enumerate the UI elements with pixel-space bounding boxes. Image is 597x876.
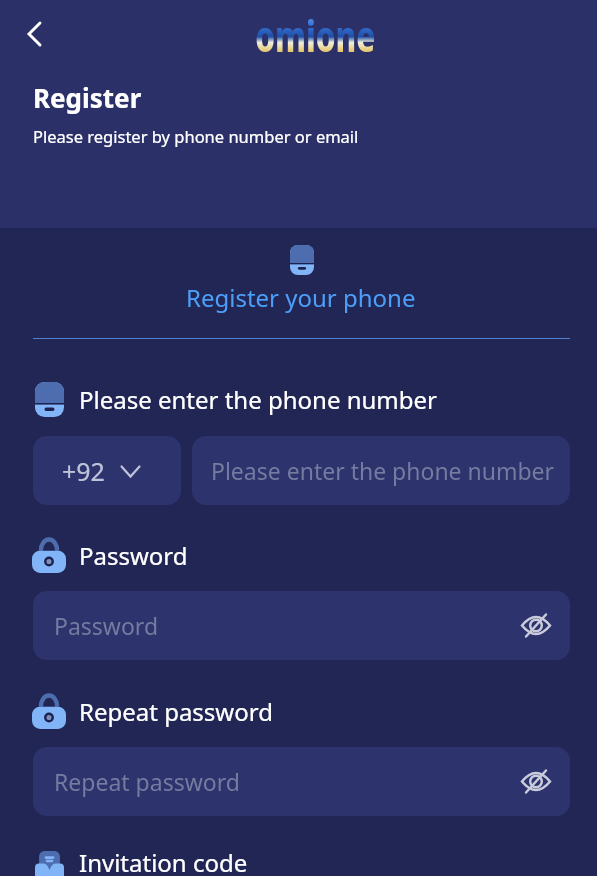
staticText: Invitation code: [79, 846, 248, 876]
staticText: +92: [62, 454, 105, 488]
button[interactable]: +92: [33, 436, 181, 505]
staticText: Please register by phone number or email: [33, 125, 359, 147]
button[interactable]: Repeat password: [33, 747, 570, 816]
staticText: Repeat password: [79, 695, 273, 728]
staticText: omione: [255, 6, 376, 65]
staticText: Password: [54, 610, 159, 641]
staticText: Repeat password: [54, 766, 240, 797]
staticText: Register: [33, 80, 142, 115]
button[interactable]: Please enter the phone number: [192, 436, 570, 505]
button[interactable]: Register your phone: [0, 281, 597, 314]
staticText: Please enter the phone number: [79, 383, 438, 416]
staticText: Password: [79, 539, 188, 572]
button[interactable]: Password: [33, 591, 570, 660]
staticText: Please enter the phone number: [211, 455, 555, 486]
button[interactable]: [18, 18, 50, 50]
staticText: Register your phone: [186, 281, 416, 314]
